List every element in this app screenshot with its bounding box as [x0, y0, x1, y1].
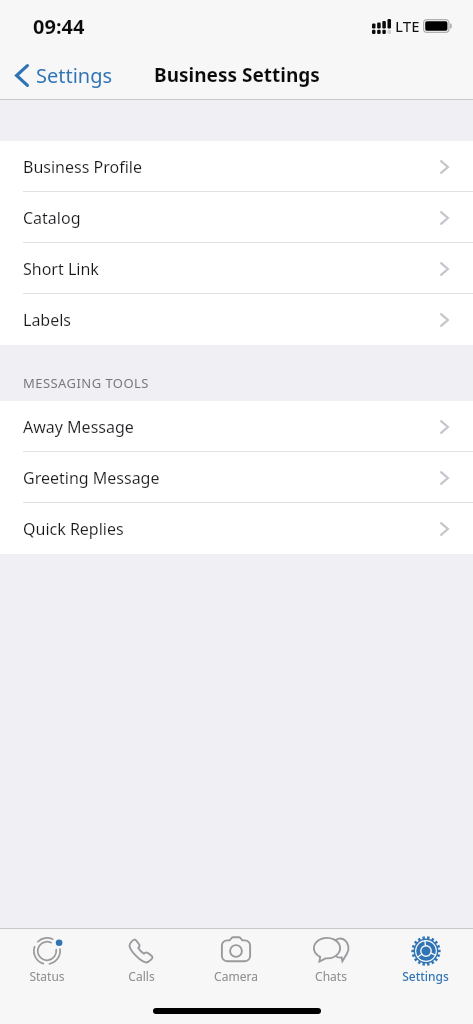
- button[interactable]: Settings: [8, 57, 121, 94]
- staticText: Labels: [23, 309, 72, 331]
- staticText: Away Message: [23, 416, 134, 438]
- button[interactable]: Labels: [0, 294, 473, 345]
- staticText: Short Link: [23, 258, 99, 280]
- button[interactable]: Chats: [283, 929, 378, 984]
- other: Calls: [126, 936, 156, 966]
- staticText: 09:44: [33, 13, 85, 40]
- staticText: Settings: [36, 62, 113, 89]
- staticText: Chats: [315, 968, 347, 984]
- button[interactable]: Quick Replies: [0, 503, 473, 554]
- staticText: Status: [29, 968, 65, 984]
- staticText: Calls: [128, 968, 155, 984]
- staticText: Catalog: [23, 207, 81, 229]
- staticText: LTE: [395, 16, 420, 36]
- other: Settings: [411, 936, 441, 966]
- staticText: Quick Replies: [23, 518, 124, 540]
- staticText: Greeting Message: [23, 467, 160, 489]
- other: Camera: [221, 936, 251, 966]
- button[interactable]: Settings: [378, 929, 473, 984]
- button[interactable]: Business Profile: [0, 141, 473, 192]
- staticText: Camera: [214, 968, 258, 984]
- staticText: MESSAGING TOOLS: [23, 374, 149, 392]
- button[interactable]: Away Message: [0, 401, 473, 452]
- other: Chats: [313, 936, 349, 966]
- staticText: Business Profile: [23, 156, 142, 178]
- other: Status: [32, 936, 62, 966]
- staticText: Business Settings: [154, 62, 320, 88]
- button[interactable]: Greeting Message: [0, 452, 473, 503]
- button[interactable]: Status: [0, 929, 94, 984]
- button[interactable]: Calls: [94, 929, 188, 984]
- button[interactable]: Camera: [188, 929, 283, 984]
- staticText: Settings: [402, 968, 449, 984]
- button[interactable]: Catalog: [0, 192, 473, 243]
- button[interactable]: Short Link: [0, 243, 473, 294]
